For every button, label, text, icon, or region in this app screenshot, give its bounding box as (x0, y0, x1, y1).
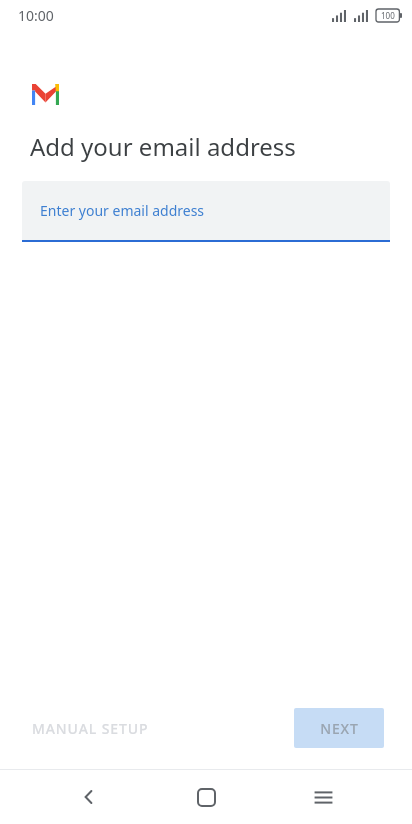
staticText: 10:00 (18, 6, 54, 25)
staticText: NEXT (320, 719, 359, 738)
staticText: Enter your email address (40, 201, 205, 220)
button[interactable]: NEXT (294, 708, 384, 748)
button[interactable]: Home (178, 770, 234, 824)
staticText: MANUAL SETUP (32, 719, 149, 738)
button[interactable]: Recent apps (295, 770, 351, 824)
button[interactable]: MANUAL SETUP (30, 709, 151, 748)
button[interactable]: Back (61, 770, 117, 824)
button[interactable]: Enter your email address (22, 181, 390, 240)
staticText: Add your email address (30, 130, 296, 163)
staticText: 100 (381, 10, 395, 21)
